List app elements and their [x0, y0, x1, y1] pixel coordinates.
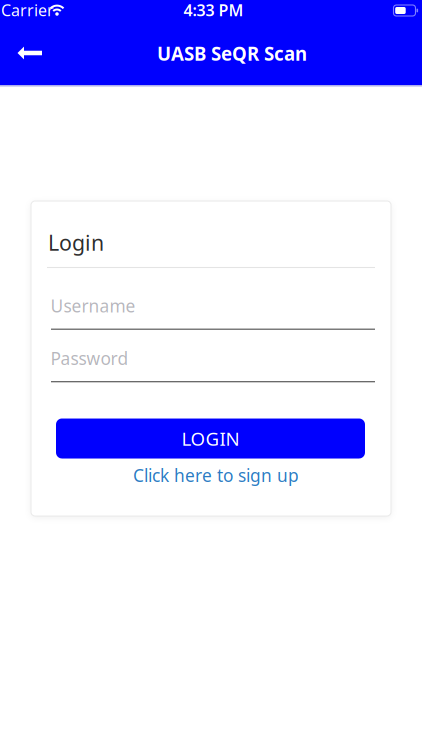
button[interactable]: LOGIN: [56, 418, 365, 458]
staticText: Carrier: [1, 0, 54, 21]
button[interactable]: Password: [47, 338, 375, 382]
staticText: UASB SeQR Scan: [157, 41, 307, 66]
staticText: LOGIN: [181, 426, 239, 451]
staticText: Username: [50, 294, 135, 317]
staticText: Password: [50, 347, 128, 370]
button[interactable]: Back: [4, 31, 52, 75]
staticText: 4:33 PM: [183, 0, 243, 21]
button[interactable]: Click here to sign up: [133, 464, 299, 487]
staticText: Login: [48, 228, 104, 257]
button[interactable]: Username: [47, 286, 375, 330]
staticText: Click here to sign up: [133, 464, 299, 487]
